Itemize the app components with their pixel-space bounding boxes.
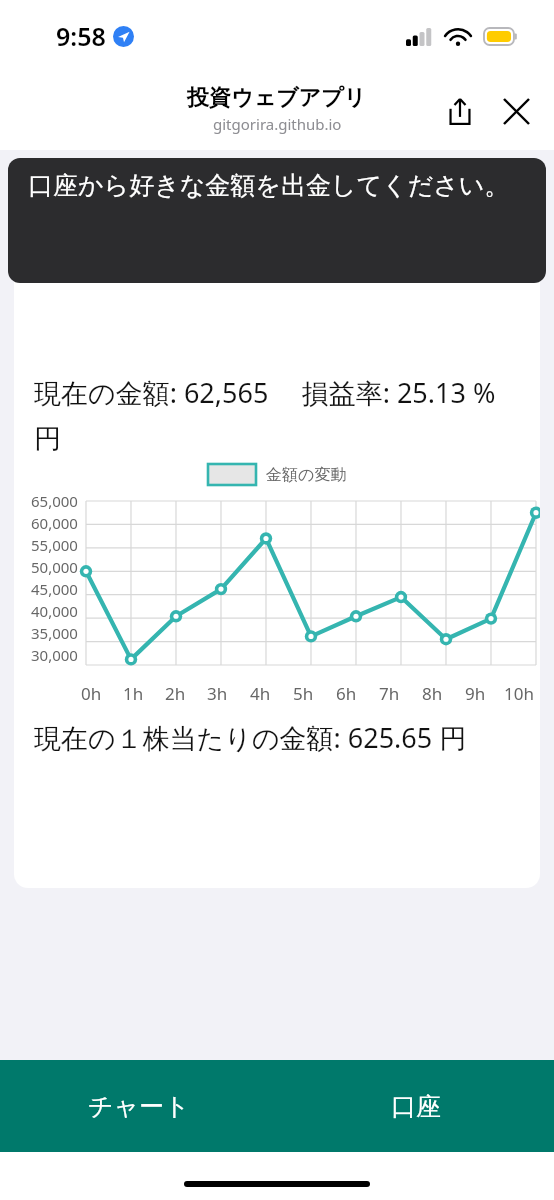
staticText: 4h: [250, 682, 271, 705]
staticText: 口座から好きな金額を出金してください。: [28, 170, 510, 201]
staticText: チャート: [88, 1091, 190, 1122]
staticText: 8h: [422, 682, 443, 705]
button[interactable]: 口座から好きな金額を出金してください。: [8, 158, 546, 283]
staticText: 現在の金額: 62,565 円: [34, 374, 277, 456]
staticText: 9:58: [56, 19, 106, 53]
staticText: 2h: [165, 682, 186, 705]
button[interactable]: Share: [440, 91, 480, 131]
staticText: 口座: [391, 1091, 441, 1122]
button[interactable]: Close: [496, 91, 536, 131]
staticText: 50,000: [31, 557, 78, 577]
staticText: 35,000: [31, 623, 78, 643]
staticText: 0h: [81, 682, 102, 705]
staticText: 60,000: [31, 513, 78, 533]
button[interactable]: チャート: [0, 1060, 277, 1152]
staticText: 3h: [207, 682, 228, 705]
staticText: 損益率: 25.13 %: [277, 374, 520, 411]
staticText: 9h: [465, 682, 486, 705]
staticText: 金額の変動: [266, 465, 347, 485]
staticText: 45,000: [31, 579, 78, 599]
staticText: 55,000: [31, 535, 78, 555]
staticText: 5h: [293, 682, 314, 705]
staticText: 30,000: [31, 645, 78, 665]
staticText: 1h: [123, 682, 144, 705]
staticText: 65,000: [31, 491, 78, 511]
staticText: チャート: [14, 180, 169, 228]
staticText: 現在の１株当たりの金額: 625.65 円: [34, 719, 467, 756]
staticText: gitgorira.github.io: [213, 114, 342, 134]
staticText: 投資ウェブアプリ: [187, 84, 367, 112]
button[interactable]: 口座: [277, 1060, 554, 1152]
staticText: 40,000: [31, 601, 78, 621]
staticText: 6h: [336, 682, 357, 705]
staticText: 10h: [504, 682, 534, 705]
staticText: 7h: [379, 682, 400, 705]
